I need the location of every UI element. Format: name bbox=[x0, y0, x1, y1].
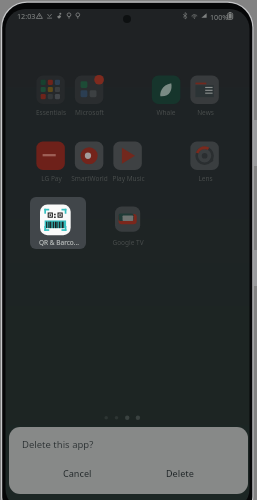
staticText: News bbox=[197, 108, 214, 117]
staticText: Play Music bbox=[112, 174, 145, 183]
staticText: 12:03 bbox=[17, 11, 36, 21]
button[interactable]: Delete bbox=[151, 463, 209, 483]
staticText: Google TV bbox=[112, 238, 144, 247]
staticText: Lens bbox=[198, 174, 213, 183]
staticText: SmartWorld bbox=[71, 174, 108, 183]
button[interactable]: Cancel bbox=[48, 463, 106, 483]
staticText: Delete this app? bbox=[22, 438, 94, 451]
staticText: Cancel bbox=[63, 467, 92, 479]
staticText: Whale bbox=[156, 108, 176, 117]
staticText: Microsoft bbox=[75, 108, 104, 117]
staticText: 100% bbox=[210, 12, 229, 22]
staticText: Delete bbox=[166, 467, 194, 479]
staticText: Essentials bbox=[36, 108, 66, 117]
staticText: LG Pay bbox=[41, 174, 62, 183]
staticText: QR & Barco... bbox=[39, 238, 79, 247]
button[interactable] bbox=[30, 197, 86, 249]
